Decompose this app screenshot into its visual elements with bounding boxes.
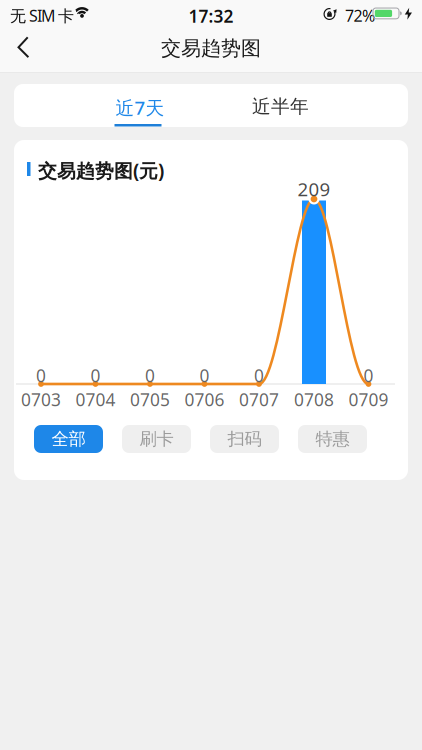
staticText: 72% <box>345 5 375 26</box>
staticText: 0 <box>90 364 100 387</box>
button[interactable]: 近半年 <box>220 84 340 127</box>
staticText: 全部 <box>51 428 85 450</box>
staticText: 交易趋势图 <box>161 36 261 61</box>
staticText: 209 <box>297 176 330 201</box>
staticText: 0 <box>36 364 46 387</box>
button[interactable]: 近7天 <box>80 84 200 127</box>
staticText: 无 SIM 卡 <box>10 5 74 26</box>
staticText: 0 <box>145 364 155 387</box>
staticText: 0707 <box>239 388 279 411</box>
staticText: 0708 <box>294 388 334 411</box>
button[interactable]: 扫码 <box>210 425 279 453</box>
staticText: 刷卡 <box>139 428 173 450</box>
staticText: 交易趋势图(元) <box>38 158 164 183</box>
staticText: 近半年 <box>252 95 309 118</box>
button[interactable]: 刷卡 <box>122 425 191 453</box>
button[interactable]: 特惠 <box>298 425 367 453</box>
staticText: 0709 <box>348 388 388 411</box>
staticText: 近7天 <box>115 95 164 120</box>
staticText: 17:32 <box>188 4 233 27</box>
staticText: 0 <box>363 364 373 387</box>
staticText: 0 <box>199 364 209 387</box>
staticText: 0703 <box>21 388 61 411</box>
button[interactable]: 全部 <box>34 425 103 453</box>
staticText: 扫码 <box>227 428 261 450</box>
staticText: 0704 <box>75 388 115 411</box>
staticText: 特惠 <box>315 428 349 450</box>
staticText: 0 <box>254 364 264 387</box>
staticText: 0705 <box>130 388 170 411</box>
button[interactable]: Back <box>0 24 422 750</box>
staticText: 0706 <box>184 388 224 411</box>
